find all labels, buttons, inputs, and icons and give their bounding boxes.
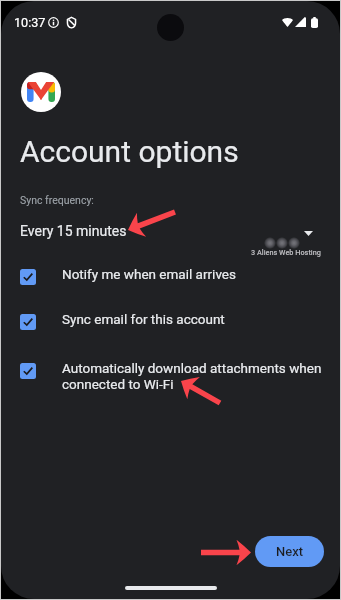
staticText: Sync email for this account xyxy=(62,311,225,327)
button[interactable]: Gmail xyxy=(21,72,61,112)
staticText: Notify me when email arrives xyxy=(62,266,236,282)
staticText: 10:37 xyxy=(14,15,46,30)
button[interactable]: Sync email for this account xyxy=(1,305,340,339)
button[interactable]: Next xyxy=(255,536,324,567)
staticText: connected to Wi-Fi xyxy=(62,376,174,392)
button[interactable]: Automatically download attachments when xyxy=(1,354,340,404)
button[interactable]: Every 15 minutes xyxy=(1,219,340,243)
staticText: Sync frequency: xyxy=(20,194,94,206)
staticText: 3 Aliens Web Hosting xyxy=(251,248,321,257)
staticText: Account options xyxy=(20,134,239,169)
staticText: Every 15 minutes xyxy=(20,223,127,239)
staticText: Automatically download attachments when xyxy=(62,360,322,376)
staticText: Next xyxy=(276,544,304,559)
button[interactable]: Notify me when email arrives xyxy=(1,260,340,294)
